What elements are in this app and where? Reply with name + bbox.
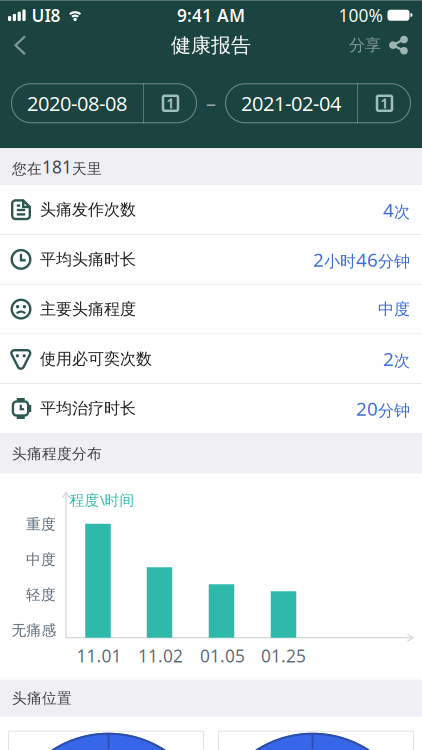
staticText: 11.01 bbox=[76, 644, 121, 667]
staticText: 1 bbox=[166, 94, 174, 112]
staticText: – bbox=[206, 90, 216, 117]
button[interactable]: Share bbox=[349, 31, 422, 59]
staticText: 1 bbox=[380, 94, 388, 112]
staticText: 程度\时间 bbox=[69, 490, 134, 509]
button[interactable]: Select date bbox=[225, 83, 411, 123]
staticText: 2次 bbox=[383, 346, 410, 371]
staticText: 中度 bbox=[378, 299, 410, 319]
staticText: 健康报告 bbox=[171, 33, 251, 58]
staticText: 主要头痛程度 bbox=[40, 299, 136, 319]
staticText: 头痛发作次数 bbox=[40, 200, 136, 220]
staticText: 9:41 AM bbox=[177, 4, 245, 27]
staticText: 20分钟 bbox=[356, 396, 410, 421]
staticText: 中度 bbox=[26, 551, 56, 569]
staticText: 100% bbox=[338, 4, 382, 27]
staticText: UI8 bbox=[32, 4, 61, 27]
staticText: 11.02 bbox=[138, 644, 183, 667]
staticText: 重度 bbox=[26, 515, 56, 533]
staticText: 2020-08-08 bbox=[27, 90, 127, 117]
staticText: 平均治疗时长 bbox=[40, 399, 136, 418]
staticText: 2小时46分钟 bbox=[313, 247, 410, 272]
button[interactable]: Select date bbox=[11, 83, 197, 123]
staticText: 01.05 bbox=[200, 644, 245, 667]
staticText: 01.25 bbox=[261, 644, 306, 667]
staticText: 4次 bbox=[383, 197, 410, 222]
staticText: 平均头痛时长 bbox=[40, 250, 136, 269]
staticText: 轻度 bbox=[26, 586, 56, 604]
staticText: 分享 bbox=[349, 35, 381, 55]
staticText: 您在181天里 bbox=[12, 155, 102, 178]
staticText: 头痛程度分布 bbox=[12, 445, 102, 463]
staticText: 无痛感 bbox=[11, 621, 56, 639]
staticText: 头痛位置 bbox=[12, 689, 72, 707]
button[interactable]: Back bbox=[0, 30, 27, 60]
staticText: 使用必可奕次数 bbox=[40, 349, 152, 369]
staticText: 2021-02-04 bbox=[241, 90, 341, 117]
